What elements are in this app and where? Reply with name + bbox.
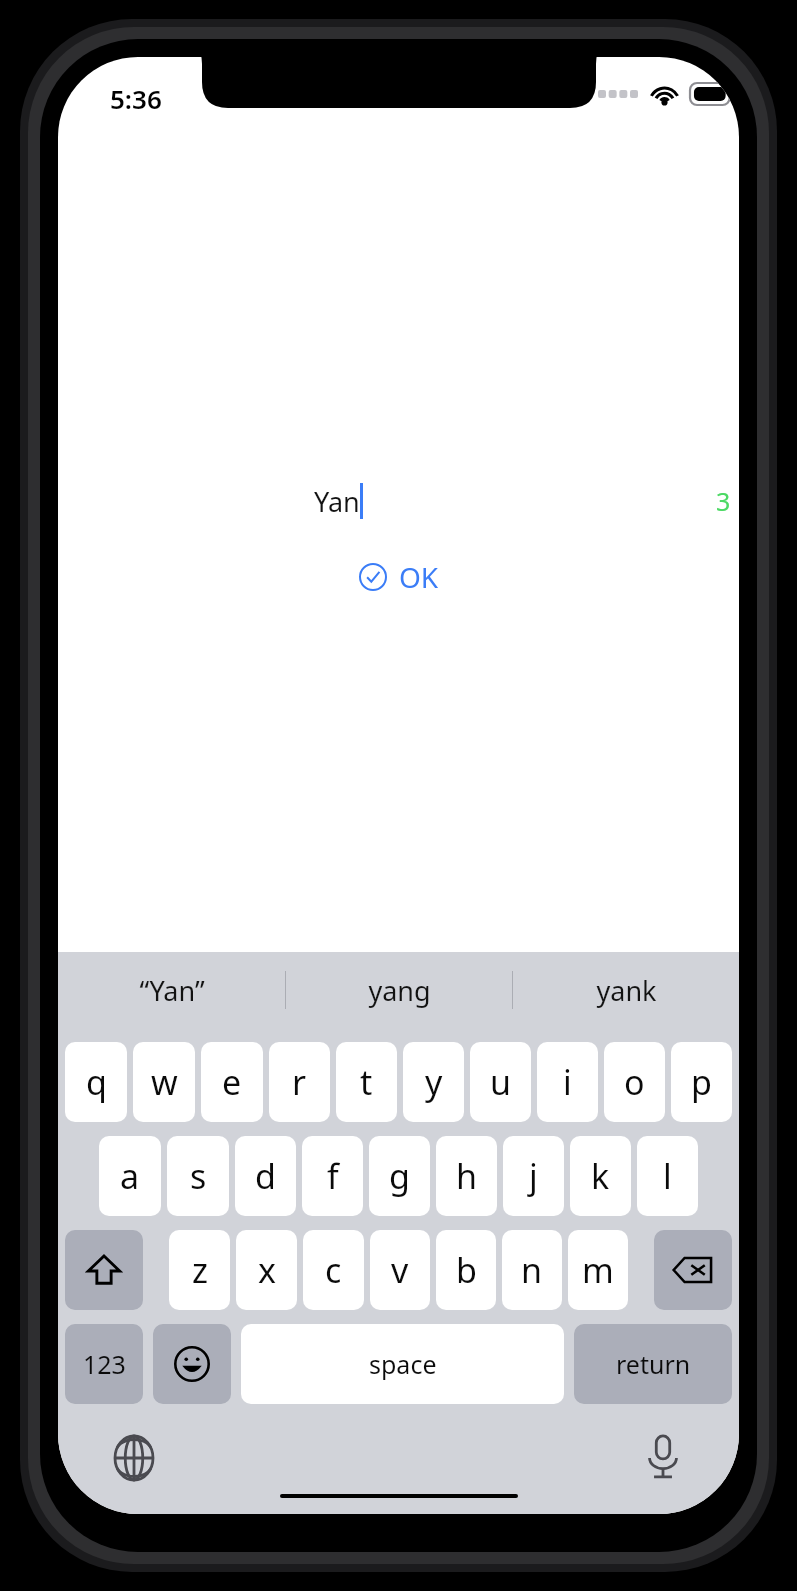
- staticText: y: [425, 1059, 443, 1105]
- button[interactable]: c: [303, 1230, 364, 1310]
- button[interactable]: Dictation: [633, 1428, 693, 1488]
- staticText: p: [691, 1059, 712, 1105]
- button[interactable]: w: [133, 1042, 195, 1122]
- staticText: return: [616, 1347, 691, 1381]
- staticText: Yan: [314, 483, 360, 520]
- button[interactable]: q: [65, 1042, 127, 1122]
- staticText: u: [490, 1059, 512, 1105]
- button[interactable]: yang: [286, 952, 512, 1028]
- staticText: c: [325, 1247, 342, 1293]
- button[interactable]: v: [370, 1230, 430, 1310]
- button[interactable]: Emoji: [153, 1324, 231, 1404]
- button[interactable]: a: [99, 1136, 161, 1216]
- button[interactable]: k: [570, 1136, 631, 1216]
- staticText: d: [255, 1153, 276, 1199]
- button[interactable]: Change keyboard: [104, 1428, 164, 1488]
- staticText: 123: [83, 1347, 126, 1381]
- staticText: space: [369, 1347, 437, 1381]
- staticText: i: [563, 1059, 572, 1105]
- staticText: yank: [596, 972, 657, 1009]
- button[interactable]: j: [503, 1136, 564, 1216]
- button[interactable]: o: [604, 1042, 665, 1122]
- button[interactable]: x: [236, 1230, 297, 1310]
- staticText: w: [151, 1059, 178, 1105]
- button[interactable]: y: [403, 1042, 464, 1122]
- staticText: 5:36: [110, 81, 162, 116]
- button[interactable]: t: [336, 1042, 397, 1122]
- button[interactable]: OK: [347, 551, 451, 603]
- staticText: n: [521, 1247, 543, 1293]
- button[interactable]: b: [436, 1230, 496, 1310]
- staticText: “Yan”: [139, 972, 205, 1009]
- staticText: o: [624, 1059, 645, 1105]
- button[interactable]: i: [537, 1042, 598, 1122]
- staticText: 3: [716, 484, 731, 518]
- button[interactable]: l: [637, 1136, 698, 1216]
- button[interactable]: space: [241, 1324, 564, 1404]
- button[interactable]: f: [302, 1136, 363, 1216]
- button[interactable]: n: [502, 1230, 562, 1310]
- staticText: OK: [399, 558, 439, 596]
- staticText: a: [120, 1153, 140, 1199]
- staticText: r: [292, 1059, 307, 1105]
- button[interactable]: Shift: [65, 1230, 143, 1310]
- staticText: h: [456, 1153, 478, 1199]
- staticText: e: [222, 1059, 242, 1105]
- button[interactable]: z: [169, 1230, 230, 1310]
- staticText: q: [86, 1059, 107, 1105]
- staticText: yang: [368, 972, 431, 1009]
- staticText: g: [389, 1153, 410, 1199]
- staticText: k: [591, 1153, 610, 1199]
- button[interactable]: r: [269, 1042, 330, 1122]
- button[interactable]: 123: [65, 1324, 143, 1404]
- button[interactable]: “Yan”: [58, 952, 285, 1028]
- button[interactable]: g: [369, 1136, 430, 1216]
- button[interactable]: u: [470, 1042, 531, 1122]
- staticText: f: [327, 1153, 339, 1199]
- button[interactable]: yank: [513, 952, 739, 1028]
- button[interactable]: p: [671, 1042, 732, 1122]
- staticText: t: [360, 1059, 373, 1105]
- staticText: z: [192, 1247, 208, 1293]
- button[interactable]: s: [167, 1136, 229, 1216]
- button[interactable]: Backspace: [654, 1230, 732, 1310]
- button[interactable]: d: [235, 1136, 296, 1216]
- staticText: b: [456, 1247, 477, 1293]
- staticText: j: [529, 1153, 538, 1199]
- staticText: l: [663, 1153, 672, 1199]
- button[interactable]: return: [574, 1324, 732, 1404]
- staticText: x: [258, 1247, 276, 1293]
- button[interactable]: h: [436, 1136, 497, 1216]
- staticText: m: [582, 1247, 614, 1293]
- button[interactable]: m: [568, 1230, 628, 1310]
- button[interactable]: e: [201, 1042, 263, 1122]
- staticText: s: [190, 1153, 207, 1199]
- staticText: v: [391, 1247, 409, 1293]
